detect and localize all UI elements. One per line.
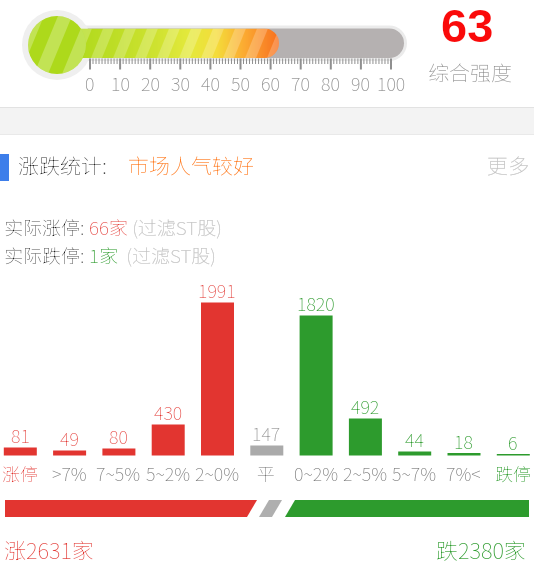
staticText: 5~7%: [392, 460, 436, 486]
staticText: 0: [85, 70, 95, 96]
staticText: (过滤ST股): [118, 241, 217, 269]
staticText: 147: [252, 420, 281, 446]
staticText: 平: [257, 460, 275, 486]
staticText: 20: [141, 70, 160, 96]
staticText: 10: [111, 70, 130, 96]
button[interactable]: 涨跌统计:: [18, 150, 254, 180]
staticText: 49: [60, 425, 79, 451]
staticText: 涨2631家: [4, 533, 94, 565]
staticText: (过滤ST股): [128, 213, 222, 241]
staticText: 实际涨停:: [4, 213, 89, 241]
staticText: 90: [351, 70, 370, 96]
staticText: 更多: [487, 150, 529, 180]
staticText: 63: [441, 0, 494, 52]
staticText: 7~5%: [96, 460, 140, 486]
staticText: 1820: [297, 290, 335, 316]
staticText: 66家: [89, 213, 128, 241]
staticText: 2~0%: [195, 460, 239, 486]
staticText: 5~2%: [146, 460, 190, 486]
staticText: 80: [109, 423, 128, 449]
button[interactable]: 更多: [480, 150, 529, 180]
staticText: 60: [261, 70, 280, 96]
staticText: 18: [454, 428, 473, 454]
staticText: 100: [377, 70, 406, 96]
staticText: 81: [11, 422, 30, 448]
staticText: 44: [405, 426, 424, 452]
staticText: 50: [231, 70, 250, 96]
staticText: 70: [291, 70, 310, 96]
staticText: 30: [171, 70, 190, 96]
staticText: 1家: [89, 241, 118, 269]
staticText: 涨停: [2, 460, 38, 486]
staticText: 市场人气较好: [128, 150, 254, 180]
staticText: 实际跌停:: [4, 241, 89, 269]
staticText: 40: [201, 70, 220, 96]
staticText: 涨跌统计:: [18, 150, 107, 180]
staticText: 2~5%: [343, 460, 387, 486]
staticText: 492: [351, 393, 380, 419]
staticText: 7%<: [446, 460, 481, 486]
staticText: 80: [321, 70, 340, 96]
staticText: 1991: [198, 277, 236, 303]
staticText: 跌2380家: [436, 533, 526, 565]
staticText: >7%: [52, 460, 87, 486]
staticText: 6: [508, 429, 518, 455]
staticText: 430: [154, 399, 183, 425]
staticText: 0~2%: [294, 460, 338, 486]
staticText: 跌停: [495, 460, 531, 486]
staticText: 综合强度: [428, 57, 512, 87]
